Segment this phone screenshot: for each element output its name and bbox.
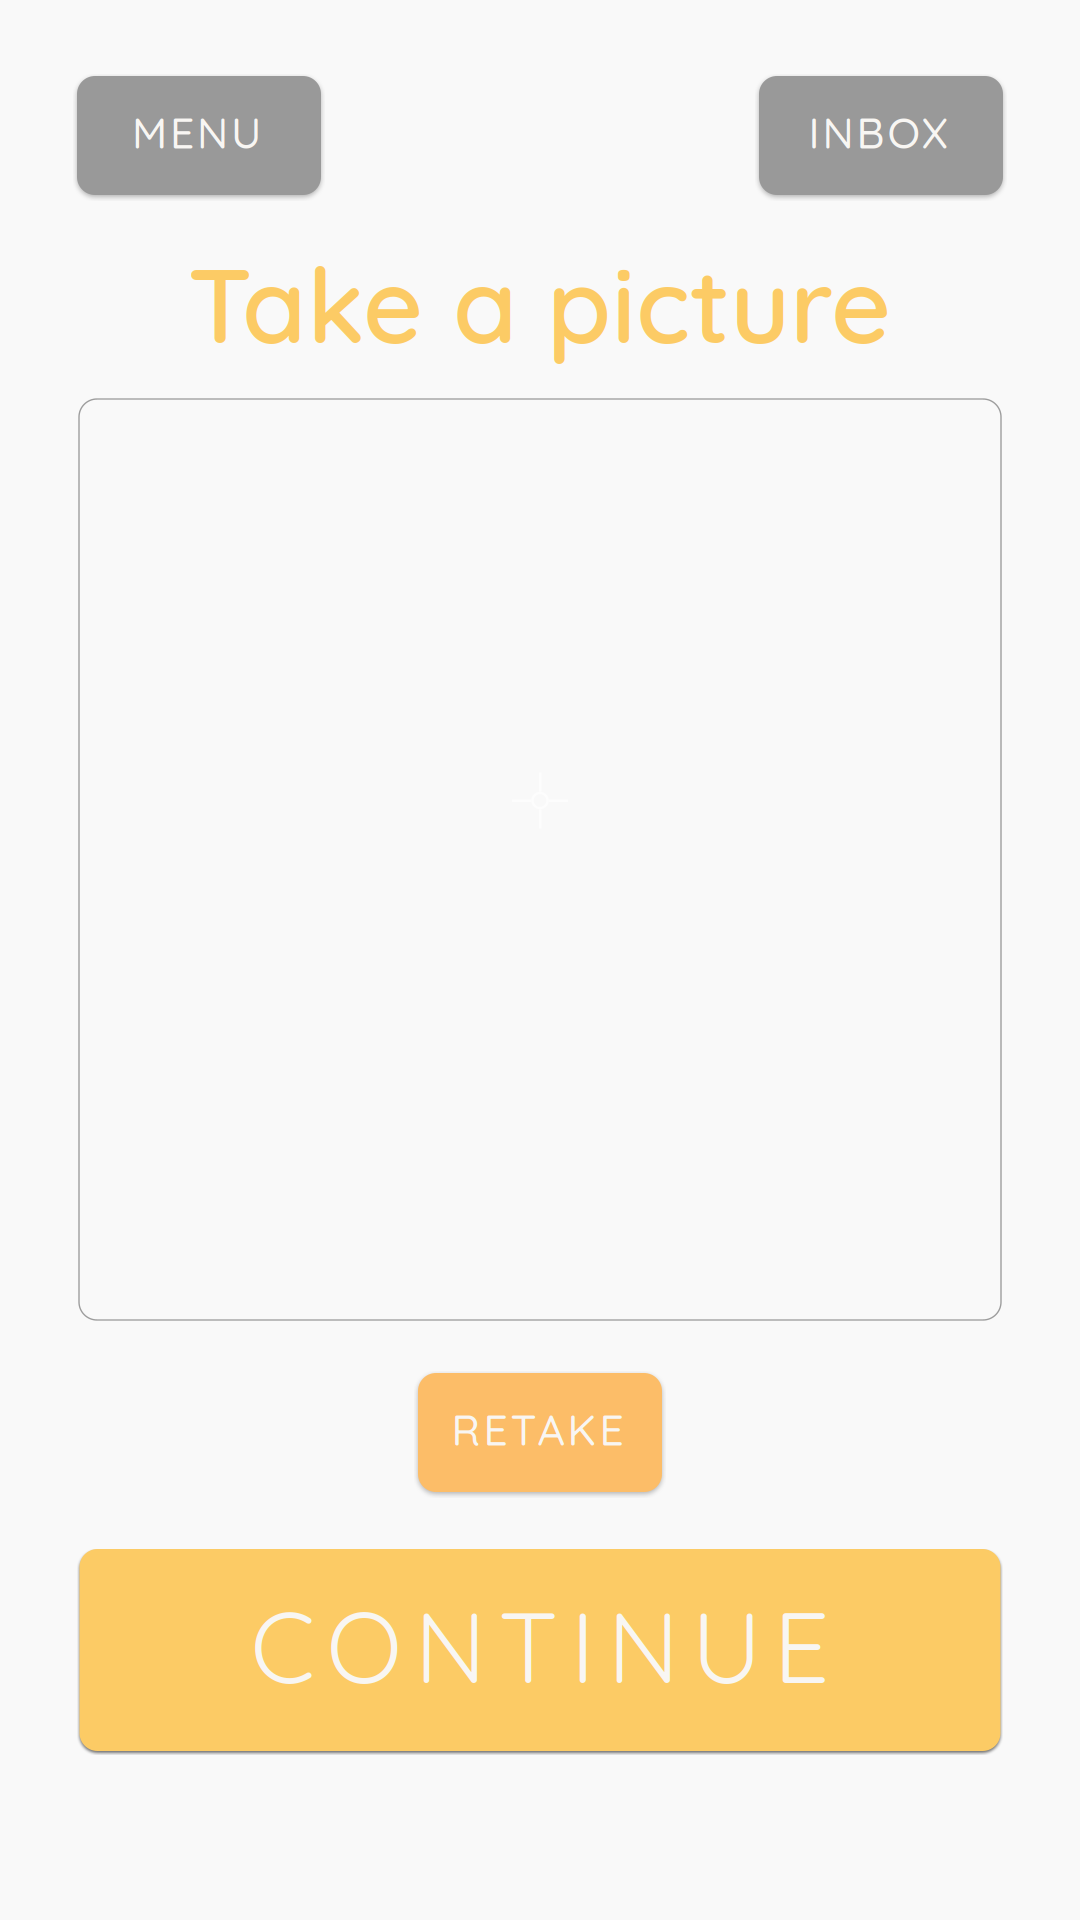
- staticText: Take a picture: [188, 239, 892, 369]
- button[interactable]: INBOX: [759, 76, 1003, 195]
- button[interactable]: RETAKE: [418, 1373, 662, 1492]
- button[interactable]: Take a picture: [79, 399, 1001, 1320]
- staticText: MENU: [132, 106, 261, 159]
- button[interactable]: MENU: [77, 76, 321, 195]
- staticText: RETAKE: [451, 1403, 623, 1456]
- staticText: CONTINUE: [250, 1584, 829, 1708]
- button[interactable]: CONTINUE: [79, 1549, 1000, 1751]
- staticText: INBOX: [808, 106, 948, 159]
